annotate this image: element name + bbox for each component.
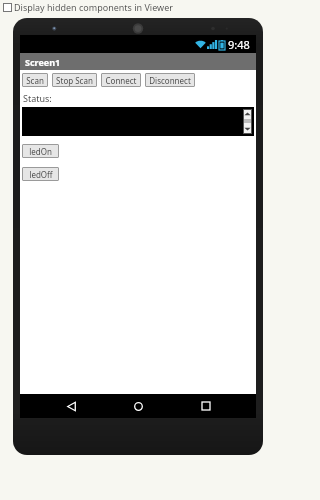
staticText: ledOn: [29, 146, 52, 157]
other: Scroll: [243, 109, 252, 134]
staticText: Display hidden components in Viewer: [14, 1, 173, 13]
button[interactable]: Recent apps: [189, 394, 223, 418]
staticText: Stop Scan: [56, 75, 93, 86]
button[interactable]: ledOn: [22, 144, 59, 158]
button[interactable]: Stop Scan: [52, 73, 97, 87]
staticText: 9:48: [228, 37, 250, 52]
staticText: Screen1: [25, 56, 61, 68]
staticText: Connect: [105, 75, 137, 86]
button[interactable]: Disconnect: [145, 73, 195, 87]
button[interactable]: Display hidden components in Viewer: [3, 1, 173, 13]
button[interactable]: ledOff: [22, 167, 59, 181]
button[interactable]: Scan: [22, 73, 48, 87]
button[interactable]: Connect: [101, 73, 141, 87]
button[interactable]: Home: [121, 394, 155, 418]
staticText: Scan: [26, 75, 44, 86]
staticText: ledOff: [29, 169, 53, 180]
button[interactable]: Scroll: [22, 107, 254, 136]
staticText: Disconnect: [149, 75, 191, 86]
button[interactable]: Back: [54, 394, 88, 418]
staticText: Status:: [23, 92, 52, 104]
